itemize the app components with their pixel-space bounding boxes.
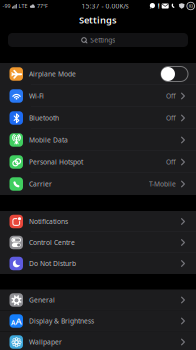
staticText: Control Centre [29, 238, 75, 247]
button[interactable]: Bluetooth [0, 107, 196, 129]
staticText: Off [166, 92, 176, 100]
staticText: -99 [2, 2, 10, 10]
button[interactable]: Wallpaper [0, 331, 196, 350]
staticText: LTE [19, 2, 28, 10]
button[interactable]: Notifications [0, 211, 196, 232]
staticText: Airplane Mode [29, 70, 76, 78]
staticText: T-Mobile [149, 180, 176, 188]
staticText: A [11, 318, 15, 327]
staticText: Notifications [29, 217, 68, 226]
button[interactable]: Wi-Fi [0, 85, 196, 107]
button[interactable]: Mobile Data [0, 129, 196, 151]
staticText: Bluetooth [29, 114, 59, 122]
staticText: Off [166, 114, 176, 122]
staticText: Do Not Disturb [29, 259, 76, 268]
staticText: Personal Hotspot [29, 158, 83, 166]
staticText: 15:37 - 0.00K/s [82, 2, 129, 10]
button[interactable]: Search [8, 33, 188, 47]
staticText: Display & Brightness [29, 317, 94, 325]
staticText: Wallpaper [29, 338, 62, 346]
staticText: 83 [189, 3, 193, 9]
button[interactable]: General [0, 289, 196, 310]
staticText: Carrier [29, 180, 52, 188]
staticText: ! [158, 2, 160, 10]
button[interactable]: Carrier [0, 173, 196, 195]
button[interactable]: A [0, 310, 196, 331]
staticText: Settings [79, 14, 117, 26]
button[interactable]: Control Centre [0, 232, 196, 253]
staticText: Mobile Data [29, 136, 68, 144]
staticText: A [15, 315, 21, 327]
staticText: Settings [90, 36, 115, 44]
button[interactable]: Do Not Disturb [0, 253, 196, 274]
staticText: Wi-Fi [29, 92, 44, 100]
staticText: 77°F [37, 2, 48, 10]
button[interactable]: Airplane Mode [0, 63, 196, 85]
staticText: General [29, 296, 55, 304]
button[interactable]: Personal Hotspot [0, 151, 196, 173]
staticText: Off [166, 158, 176, 166]
